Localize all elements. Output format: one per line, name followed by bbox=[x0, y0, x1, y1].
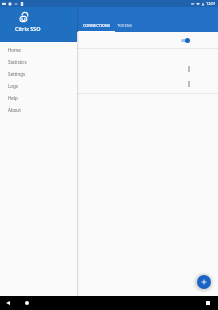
staticText: 12:01 bbox=[206, 1, 216, 6]
button[interactable]: Statistics bbox=[0, 56, 77, 68]
staticText: Help bbox=[8, 95, 18, 101]
button[interactable]: Settings bbox=[0, 68, 77, 80]
button[interactable]: More options bbox=[185, 80, 192, 87]
staticText: TOKENS bbox=[117, 23, 132, 28]
button[interactable]: Home bbox=[22, 298, 32, 308]
button[interactable]: Add connection bbox=[197, 275, 211, 289]
staticText: Settings bbox=[8, 71, 26, 77]
button[interactable]: TOKENS bbox=[115, 0, 133, 32]
button[interactable]: CONNECTIONS bbox=[78, 0, 115, 32]
button[interactable]: Recents bbox=[203, 298, 213, 308]
staticText: About bbox=[8, 107, 21, 113]
staticText: Home bbox=[8, 47, 21, 53]
staticText: Statistics bbox=[8, 59, 27, 65]
button[interactable]: More options bbox=[185, 65, 192, 72]
button[interactable]: Home bbox=[0, 44, 77, 56]
staticText: CONNECTIONS bbox=[83, 23, 110, 28]
button[interactable]: Back bbox=[3, 298, 13, 308]
staticText: Citrix SSO bbox=[15, 25, 41, 32]
button[interactable]: About bbox=[0, 104, 77, 116]
button[interactable]: Enable connection bbox=[181, 37, 190, 43]
button[interactable]: Help bbox=[0, 92, 77, 104]
staticText: Logs bbox=[8, 83, 19, 89]
button[interactable]: Logs bbox=[0, 80, 77, 92]
